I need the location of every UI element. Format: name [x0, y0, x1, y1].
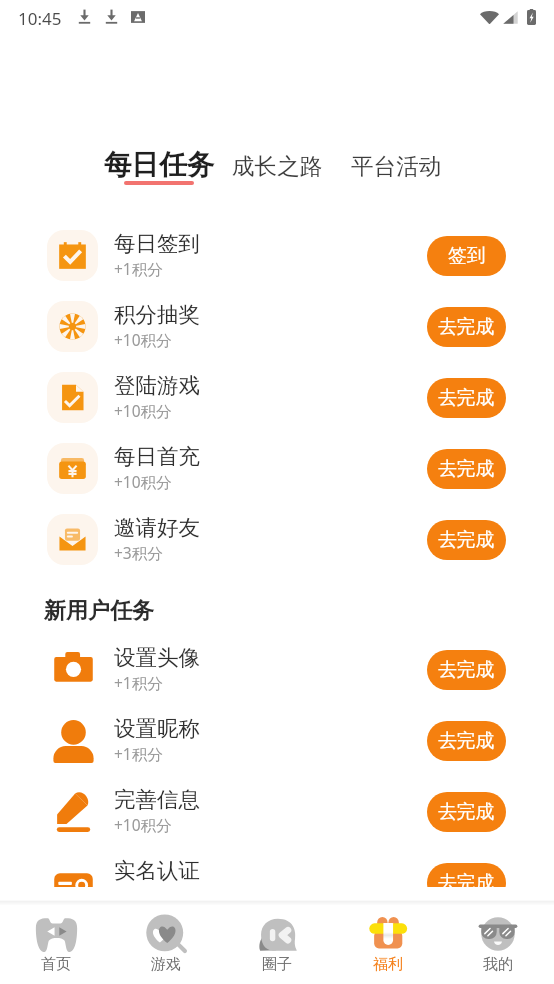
button[interactable]: 去完成 — [427, 721, 506, 761]
staticText: 完善信息 — [114, 786, 200, 813]
staticText: 积分抽奖 — [114, 301, 200, 328]
staticText: +1积分 — [114, 258, 163, 279]
staticText: 实名认证 — [114, 857, 200, 884]
staticText: 游戏 — [151, 955, 181, 974]
button[interactable]: 实名认证 — [0, 847, 554, 887]
staticText: 去完成 — [438, 386, 495, 410]
staticText: 去完成 — [438, 800, 495, 824]
button[interactable]: 去完成 — [427, 792, 506, 832]
staticText: +10积分 — [114, 400, 172, 421]
staticText: 去完成 — [438, 528, 495, 552]
button[interactable]: 去完成 — [427, 449, 506, 489]
staticText: +1积分 — [114, 743, 163, 764]
button[interactable]: 福利 — [333, 905, 443, 974]
button[interactable]: 去完成 — [427, 378, 506, 418]
staticText: 去完成 — [438, 457, 495, 481]
staticText: +10积分 — [114, 814, 172, 835]
staticText: +10积分 — [114, 329, 172, 350]
staticText: 邀请好友 — [114, 514, 200, 541]
staticText: 首页 — [41, 955, 71, 974]
button[interactable]: 成长之路 — [232, 152, 323, 180]
button[interactable]: 积分抽奖 — [0, 291, 554, 362]
staticText: 去完成 — [438, 658, 495, 682]
button[interactable]: 设置昵称 — [0, 705, 554, 776]
button[interactable]: 游戏 — [111, 905, 221, 974]
button[interactable]: 每日首充 — [0, 433, 554, 504]
button[interactable]: 每日任务 — [104, 148, 214, 187]
staticText: +3积分 — [114, 542, 163, 563]
button[interactable]: 我的 — [443, 905, 553, 974]
staticText: 每日签到 — [114, 230, 200, 257]
button[interactable]: 去完成 — [427, 307, 506, 347]
staticText: 成长之路 — [232, 152, 323, 180]
button[interactable]: 完善信息 — [0, 776, 554, 847]
staticText: 去完成 — [438, 315, 495, 339]
button[interactable]: 签到 — [427, 236, 506, 276]
staticText: 登陆游戏 — [114, 372, 200, 399]
staticText: 每日首充 — [114, 443, 200, 470]
staticText: 福利 — [373, 955, 403, 974]
staticText: +10积分 — [114, 471, 172, 492]
staticText: 每日任务 — [104, 148, 214, 183]
staticText: 设置昵称 — [114, 715, 200, 742]
button[interactable]: 邀请好友 — [0, 504, 554, 575]
staticText: 10:45 — [18, 7, 62, 26]
staticText: 签到 — [448, 244, 486, 268]
staticText: 圈子 — [262, 955, 292, 974]
button[interactable]: 首页 — [1, 905, 111, 974]
button[interactable]: 登陆游戏 — [0, 362, 554, 433]
button[interactable]: 每日签到 — [0, 220, 554, 291]
staticText: 我的 — [483, 955, 513, 974]
staticText: 去完成 — [438, 729, 495, 753]
button[interactable]: 设置头像 — [0, 634, 554, 705]
button[interactable]: 圈子 — [222, 905, 332, 974]
staticText: +1积分 — [114, 672, 163, 693]
staticText: 设置头像 — [114, 644, 200, 671]
button[interactable]: 去完成 — [427, 863, 506, 887]
button[interactable]: 去完成 — [427, 520, 506, 560]
staticText: 平台活动 — [351, 152, 442, 180]
staticText: 去完成 — [438, 871, 495, 887]
button[interactable]: 平台活动 — [351, 152, 442, 180]
staticText: 新用户任务 — [44, 597, 154, 625]
button[interactable]: 去完成 — [427, 650, 506, 690]
